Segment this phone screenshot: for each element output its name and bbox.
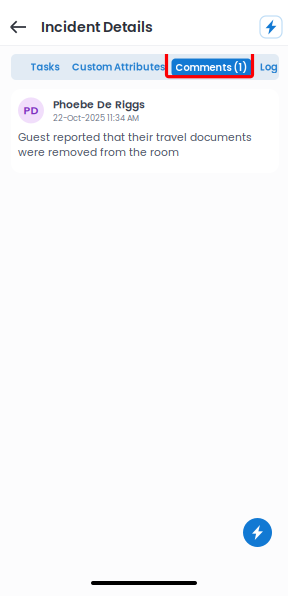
staticText: 22-Oct-2025 11:34 AM xyxy=(53,112,139,124)
button[interactable]: Custom Attributes xyxy=(71,56,166,77)
button[interactable]: Quick action xyxy=(260,16,282,38)
button[interactable]: New comment xyxy=(243,518,272,547)
button[interactable]: Back xyxy=(5,10,31,44)
staticText: Incident Details xyxy=(41,17,153,37)
staticText: PD xyxy=(23,103,38,118)
staticText: Custom Attributes xyxy=(72,60,165,74)
staticText: Guest reported that their travel documen… xyxy=(18,130,252,160)
button[interactable]: Log xyxy=(251,56,287,77)
staticText: Comments (1) xyxy=(175,61,247,74)
staticText: Tasks xyxy=(30,60,59,74)
button[interactable]: Tasks xyxy=(17,56,73,77)
button[interactable]: Comments (1) xyxy=(171,58,251,76)
staticText: Log xyxy=(260,60,278,74)
staticText: Phoebe De Riggs xyxy=(53,97,145,112)
